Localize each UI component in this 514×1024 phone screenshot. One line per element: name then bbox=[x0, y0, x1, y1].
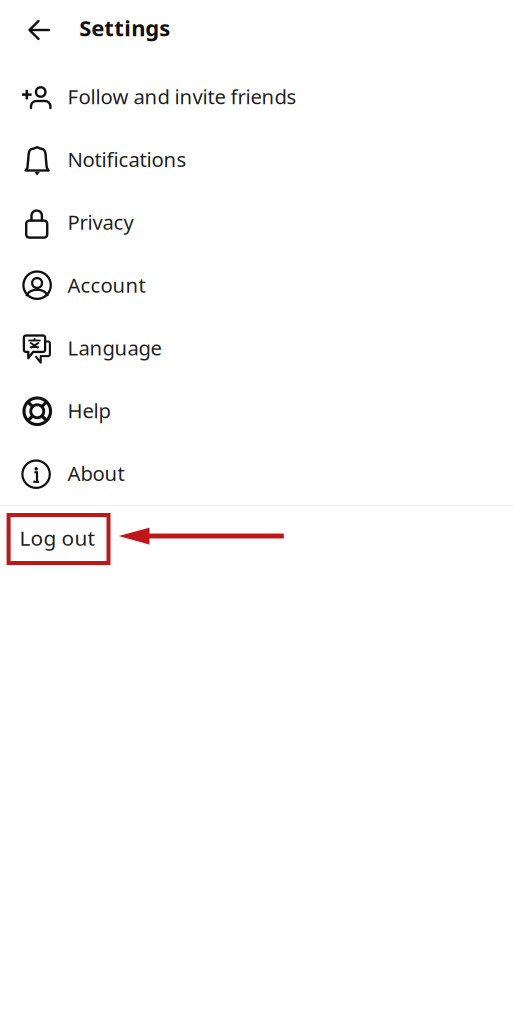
button[interactable]: Help bbox=[0, 380, 514, 442]
staticText: Language bbox=[68, 334, 162, 361]
button[interactable]: Account bbox=[0, 254, 514, 317]
staticText: Notifications bbox=[68, 145, 187, 173]
button[interactable]: About bbox=[0, 442, 514, 505]
staticText: Help bbox=[68, 397, 111, 424]
staticText: Follow and invite friends bbox=[68, 83, 297, 110]
staticText: Log out bbox=[19, 524, 95, 552]
button[interactable]: Privacy bbox=[0, 191, 514, 254]
staticText: Account bbox=[68, 271, 146, 299]
staticText: Settings bbox=[79, 13, 170, 43]
button[interactable]: Language bbox=[0, 317, 514, 380]
staticText: Privacy bbox=[68, 208, 134, 236]
staticText: About bbox=[68, 459, 125, 487]
button[interactable]: Log out bbox=[0, 507, 514, 563]
button[interactable]: Back bbox=[17, 8, 61, 52]
button[interactable]: Follow and invite friends bbox=[0, 66, 514, 128]
button[interactable]: Notifications bbox=[0, 128, 514, 191]
